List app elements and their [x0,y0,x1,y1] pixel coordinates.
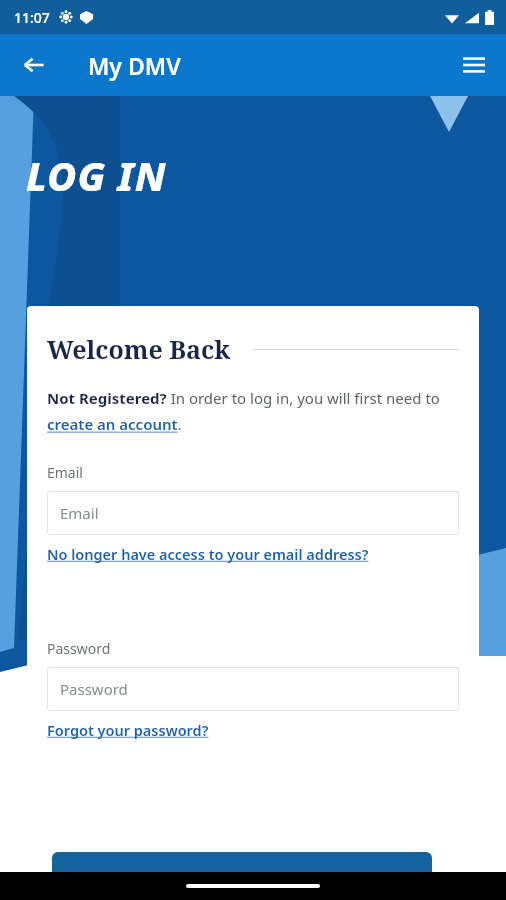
button[interactable]: Menu [450,41,498,89]
staticText: Email [60,503,99,523]
button[interactable]: Password [47,667,459,711]
staticText: LOG IN [26,148,167,202]
staticText: 11:07 [14,8,50,27]
staticText: Welcome Back [47,332,231,366]
staticText: Email [47,463,83,482]
button[interactable] [52,852,432,900]
staticText: Password [47,639,111,658]
button[interactable]: No longer have access to your email addr… [47,544,369,564]
button[interactable]: Forgot your password? [47,720,209,740]
button[interactable]: Not Registered? In order to log in, you … [47,388,459,435]
button[interactable]: Email [47,491,459,535]
button[interactable]: Back [10,41,58,89]
staticText: Password [60,679,128,699]
staticText: My DMV [88,50,181,81]
